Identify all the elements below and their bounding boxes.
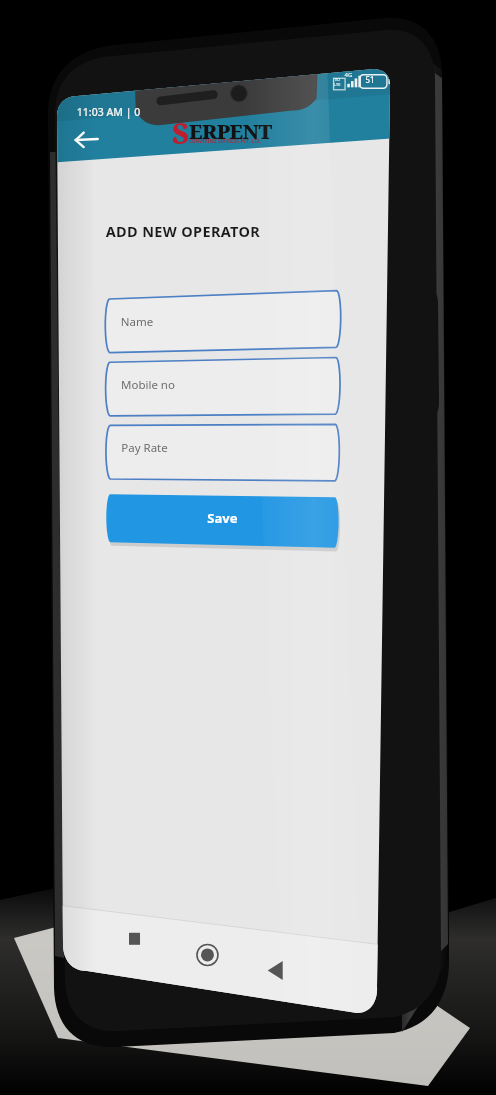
button[interactable]: Home — [194, 965, 238, 1009]
button[interactable]: Recent apps — [126, 962, 170, 1006]
button[interactable] — [104, 305, 334, 365]
button[interactable] — [104, 516, 334, 571]
button[interactable]: Back — [260, 970, 304, 1014]
button[interactable] — [104, 369, 334, 429]
button[interactable] — [104, 432, 334, 492]
button[interactable]: Back — [60, 112, 108, 160]
